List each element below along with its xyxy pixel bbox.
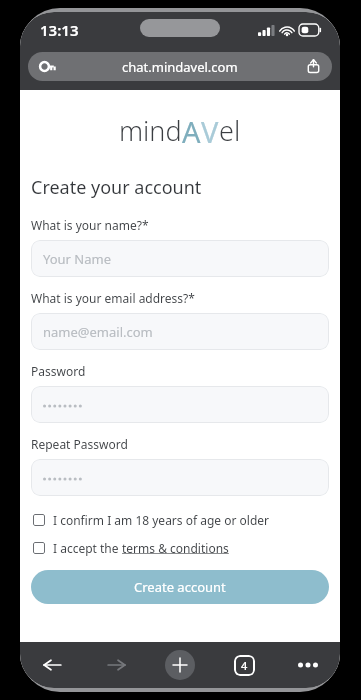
staticText: What is your name?* bbox=[31, 217, 149, 233]
staticText: A bbox=[182, 112, 201, 151]
other: Secure connection bbox=[39, 61, 56, 72]
staticText: Create your account bbox=[31, 175, 202, 200]
staticText: chat.mindavel.com bbox=[122, 58, 238, 76]
staticText: mind bbox=[119, 112, 182, 149]
staticText: I confirm I am 18 years of age or older bbox=[53, 512, 270, 528]
staticText: Repeat Password bbox=[31, 436, 128, 452]
staticText: 13:13 bbox=[40, 20, 79, 40]
button[interactable]: Tabs, 4 open bbox=[212, 642, 276, 688]
button[interactable]: Forward bbox=[84, 642, 148, 688]
staticText: name@email.com bbox=[43, 323, 153, 341]
button[interactable]: Share bbox=[307, 59, 320, 74]
staticText: 4 bbox=[241, 658, 248, 673]
staticText: Password bbox=[31, 363, 86, 379]
staticText: V bbox=[201, 112, 219, 151]
button[interactable]: Your Name bbox=[31, 240, 329, 277]
button[interactable]: name@email.com bbox=[31, 313, 329, 350]
button[interactable]: Back bbox=[20, 642, 84, 688]
staticText: Create account bbox=[134, 578, 226, 596]
staticText: el bbox=[219, 112, 241, 149]
button[interactable]: Create account bbox=[31, 570, 329, 604]
button[interactable]: New tab bbox=[148, 642, 212, 688]
staticText: Your Name bbox=[43, 250, 112, 268]
button[interactable]: More options bbox=[276, 642, 340, 688]
staticText: What is your email address?* bbox=[31, 290, 195, 306]
button[interactable]: I accept the bbox=[31, 540, 329, 556]
button[interactable]: I confirm I am 18 years of age or older bbox=[31, 512, 329, 528]
button[interactable]: terms & conditions bbox=[122, 540, 229, 556]
button[interactable] bbox=[31, 386, 329, 423]
button[interactable] bbox=[31, 459, 329, 496]
button[interactable]: Secure connection bbox=[28, 52, 332, 81]
staticText: I accept the bbox=[53, 540, 122, 556]
